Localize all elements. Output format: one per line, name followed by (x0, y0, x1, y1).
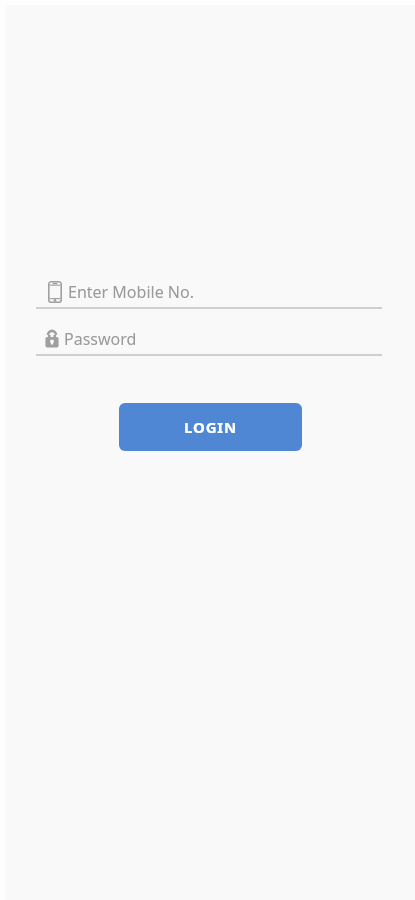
button[interactable]: Password (36, 323, 382, 356)
staticText: LOGIN (184, 417, 237, 437)
button[interactable]: LOGIN (119, 403, 302, 451)
staticText: Enter Mobile No. (68, 281, 194, 303)
staticText: Password (64, 328, 137, 350)
button[interactable]: Enter Mobile No. (36, 276, 382, 309)
